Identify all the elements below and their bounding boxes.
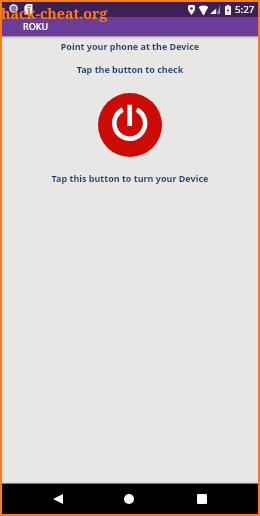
button[interactable]: Back [46,485,70,513]
staticText: Tap this button to turn your Device [2,172,258,184]
staticText: Point your phone at the Device [2,40,258,52]
staticText: hack-cheat.org [1,4,108,23]
button[interactable]: Home [117,485,141,513]
staticText: 5:27 [235,3,255,16]
button[interactable]: Recents [190,485,214,513]
staticText: ROKU [23,20,49,32]
staticText: Tap the button to check [2,63,258,75]
button[interactable]: Power [98,93,162,157]
